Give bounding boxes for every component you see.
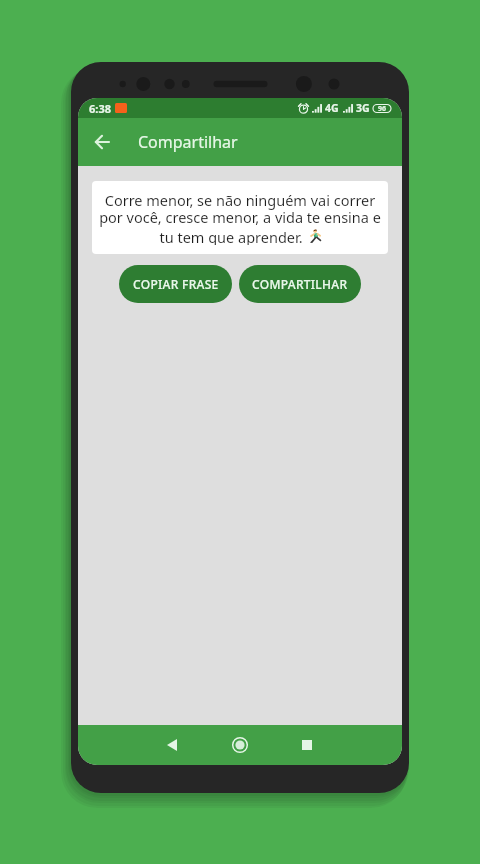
button[interactable]: Back: [78, 118, 126, 166]
button[interactable]: Recent apps: [283, 725, 331, 765]
staticText: Compartilhar: [138, 131, 238, 153]
staticText: Corre menor, se não ninguém vai correr p…: [97, 190, 383, 227]
staticText: 4G: [325, 101, 339, 115]
button[interactable]: Back: [148, 725, 196, 765]
staticText: COPIAR FRASE: [133, 276, 219, 292]
button[interactable]: Home: [216, 725, 264, 765]
staticText: 96: [378, 104, 387, 114]
staticText: 6:38: [89, 101, 111, 116]
staticText: COMPARTILHAR: [252, 276, 348, 292]
button[interactable]: COPIAR FRASE: [119, 265, 232, 303]
staticText: 3G: [356, 101, 370, 115]
staticText: tu tem que aprender.: [159, 227, 303, 245]
button[interactable]: COMPARTILHAR: [239, 265, 361, 303]
